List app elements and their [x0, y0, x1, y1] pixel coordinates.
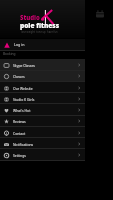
- staticText: Contact: [13, 131, 26, 136]
- staticText: Skype Classes: [13, 63, 35, 68]
- staticText: Settings: [13, 153, 26, 158]
- button[interactable]: Our Website: [0, 82, 85, 94]
- button[interactable]: Calendar: [96, 10, 104, 18]
- button[interactable]: Log in: [0, 39, 85, 50]
- staticText: Log in: [14, 42, 25, 47]
- staticText: Notifications: [13, 142, 34, 147]
- staticText: What's Hot: [13, 108, 31, 113]
- button[interactable]: Classes: [0, 70, 85, 82]
- staticText: pole fitness: [20, 21, 60, 30]
- staticText: Reviews: [13, 119, 26, 124]
- button[interactable]: Reviews: [0, 115, 85, 127]
- staticText: Studio K Girls: [13, 97, 35, 102]
- button[interactable]: Notifications: [0, 138, 85, 150]
- button[interactable]: What's Hot: [0, 104, 85, 116]
- staticText: lose weight tone up have fun: [21, 30, 58, 34]
- staticText: Studio: [20, 14, 40, 22]
- button[interactable]: Settings: [0, 149, 85, 161]
- button[interactable]: Skype Classes: [0, 59, 85, 71]
- staticText: Classes: [13, 74, 25, 79]
- button[interactable]: Studio K Girls: [0, 93, 85, 105]
- staticText: Booking: [3, 52, 16, 56]
- button[interactable]: Contact: [0, 127, 85, 139]
- staticText: Our Website: [13, 86, 33, 91]
